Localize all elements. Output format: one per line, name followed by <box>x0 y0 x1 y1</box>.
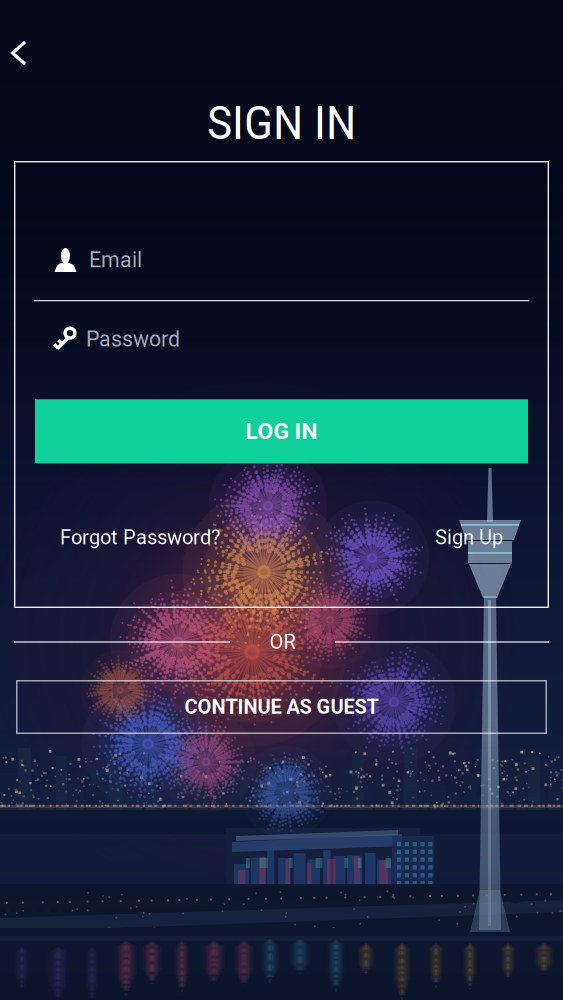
staticText: OR <box>269 630 295 654</box>
button[interactable]: LOG IN <box>35 399 528 463</box>
staticText: SIGN IN <box>207 97 356 150</box>
staticText: Sign Up <box>435 526 503 549</box>
staticText: LOG IN <box>245 418 317 445</box>
button[interactable]: CONTINUE AS GUEST <box>16 680 547 734</box>
staticText: Forgot Password? <box>60 526 220 549</box>
button[interactable]: Sign Up <box>435 526 503 549</box>
button[interactable]: Forgot Password? <box>60 526 220 549</box>
staticText: CONTINUE AS GUEST <box>184 695 378 719</box>
staticText: Password <box>86 327 180 352</box>
button[interactable]: Back <box>0 31 44 75</box>
staticText: Email <box>89 247 142 272</box>
